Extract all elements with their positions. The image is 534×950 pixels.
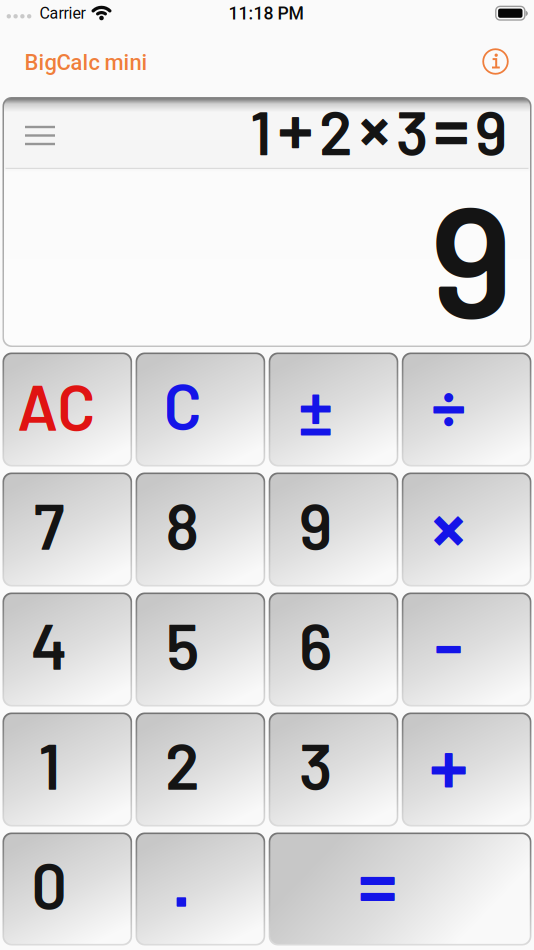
button[interactable]: - bbox=[402, 592, 531, 706]
staticText: 5 bbox=[166, 607, 199, 682]
button[interactable]: ± bbox=[269, 352, 398, 466]
button[interactable]: ÷ bbox=[402, 352, 531, 466]
staticText: 2 bbox=[165, 727, 200, 802]
staticText: BigCalc mini bbox=[24, 49, 147, 75]
staticText: 3 bbox=[396, 94, 428, 167]
staticText: 2 bbox=[319, 94, 353, 167]
staticText: = bbox=[433, 82, 469, 170]
button[interactable]: 0 bbox=[2, 832, 132, 945]
staticText: 6 bbox=[299, 607, 332, 682]
button[interactable]: AC bbox=[2, 352, 132, 466]
button[interactable] bbox=[136, 832, 265, 945]
staticText: 9 bbox=[430, 162, 512, 350]
staticText: 9 bbox=[475, 94, 507, 167]
staticText: 8 bbox=[165, 487, 199, 562]
button[interactable]: 5 bbox=[136, 592, 265, 706]
staticText: 1 bbox=[38, 727, 60, 802]
staticText: + bbox=[429, 715, 468, 811]
staticText: - bbox=[434, 599, 463, 686]
staticText: 11:18 PM bbox=[228, 3, 303, 24]
staticText: = bbox=[358, 834, 397, 930]
staticText: × bbox=[431, 476, 466, 572]
button[interactable]: 4 bbox=[2, 592, 132, 706]
staticText: Carrier bbox=[39, 4, 85, 23]
staticText: 1 bbox=[250, 94, 272, 167]
button[interactable]: × bbox=[402, 472, 531, 586]
button[interactable]: 2 bbox=[136, 712, 265, 826]
button[interactable]: 9 bbox=[269, 472, 398, 586]
staticText: 3 bbox=[299, 727, 332, 802]
staticText: 7 bbox=[34, 487, 65, 562]
button[interactable]: C bbox=[136, 352, 265, 466]
button[interactable]: + bbox=[402, 712, 531, 826]
staticText: ± bbox=[298, 365, 332, 449]
staticText: C bbox=[163, 367, 201, 442]
staticText: 9 bbox=[299, 487, 332, 562]
button[interactable]: 6 bbox=[269, 592, 398, 706]
staticText: 0 bbox=[31, 846, 67, 922]
staticText: AC bbox=[17, 368, 95, 443]
button[interactable]: 3 bbox=[269, 712, 398, 826]
button[interactable]: 8 bbox=[136, 472, 265, 586]
button[interactable]: 1 bbox=[2, 712, 132, 826]
button[interactable] bbox=[18, 115, 62, 155]
staticText: + bbox=[277, 82, 313, 170]
button[interactable]: = bbox=[269, 832, 531, 945]
staticText: ÷ bbox=[431, 361, 466, 448]
button[interactable]: 7 bbox=[2, 472, 132, 586]
staticText: × bbox=[358, 82, 390, 170]
button[interactable] bbox=[473, 39, 517, 83]
staticText: 4 bbox=[31, 607, 68, 682]
